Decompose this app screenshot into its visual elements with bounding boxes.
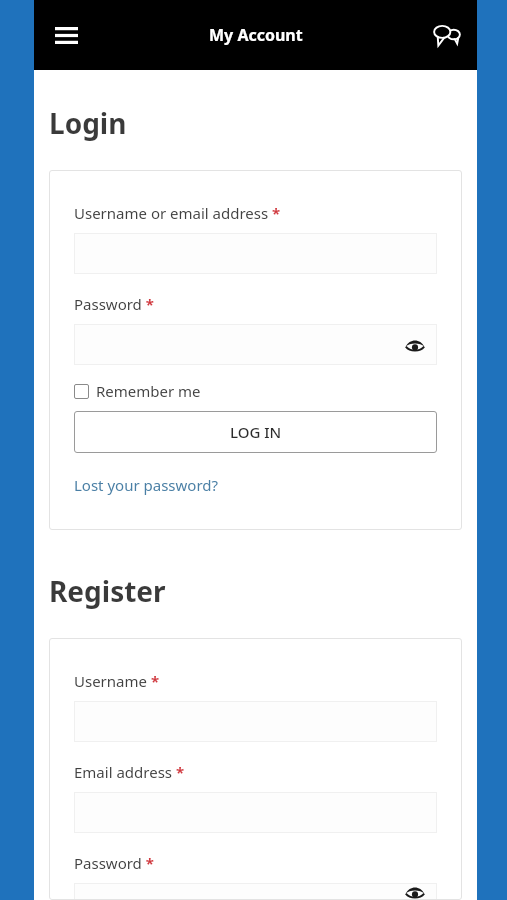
button[interactable]: LOG IN (74, 411, 437, 453)
staticText: Password * (74, 853, 154, 873)
button[interactable]: Messages (425, 13, 469, 57)
other: Show password (405, 885, 425, 899)
button[interactable]: Lost your password? (74, 475, 219, 495)
button[interactable]: Show password (74, 324, 437, 365)
staticText: Username or email address * (74, 203, 281, 223)
staticText: My Account (209, 24, 303, 46)
staticText: Password * (74, 294, 154, 314)
staticText: Email address * (74, 762, 185, 782)
staticText: Login (49, 104, 127, 142)
staticText: Register (49, 572, 166, 610)
staticText: Username * (74, 671, 160, 691)
button[interactable]: Remember me (74, 381, 201, 401)
other: Show password (405, 338, 425, 352)
staticText: LOG IN (230, 422, 282, 442)
button[interactable]: Menu (44, 13, 88, 57)
button[interactable]: Show password (74, 883, 437, 900)
staticText: Remember me (96, 381, 201, 401)
